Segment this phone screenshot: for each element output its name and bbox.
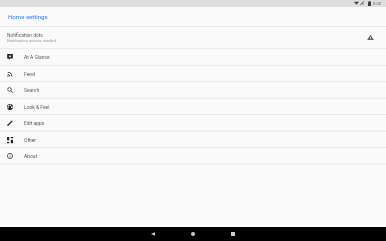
button[interactable]: Look & Feel (0, 98, 386, 114)
button[interactable]: About (0, 147, 386, 163)
button[interactable]: Feed (0, 65, 386, 81)
staticText: Notification access needed (7, 38, 56, 43)
button[interactable]: Other (0, 131, 386, 147)
staticText: Edit apps (24, 120, 45, 126)
staticText: Notification dots (7, 33, 43, 39)
staticText: About (24, 153, 38, 159)
staticText: Feed (24, 71, 35, 77)
button[interactable]: Back (133, 227, 173, 241)
button[interactable]: Notification dots (0, 27, 386, 48)
button[interactable]: Home (173, 227, 213, 241)
staticText: Search (24, 87, 40, 93)
button[interactable]: Search (0, 81, 386, 97)
staticText: 8:00 (373, 1, 382, 6)
button[interactable]: Recents (213, 227, 253, 241)
staticText: Other (24, 137, 37, 143)
other: Warning (367, 34, 374, 41)
staticText: Home settings (8, 13, 48, 20)
staticText: Look & Feel (24, 104, 50, 110)
button[interactable]: Home settings (0, 7, 386, 26)
button[interactable]: At A Glance (0, 48, 386, 64)
button[interactable]: Edit apps (0, 114, 386, 130)
staticText: At A Glance (24, 54, 50, 60)
